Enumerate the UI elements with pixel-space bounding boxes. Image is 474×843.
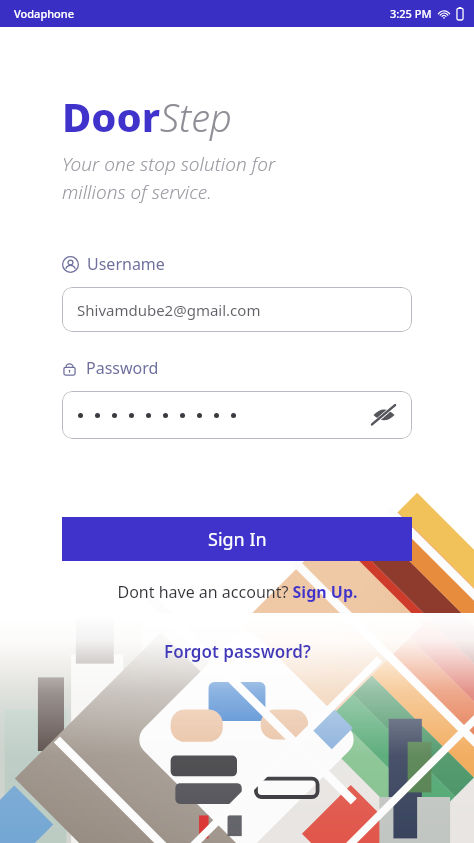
button[interactable]: Show password: [368, 399, 400, 431]
button[interactable]: Dont have an account? Sign Up.: [117, 581, 358, 603]
staticText: Password: [86, 357, 159, 379]
button[interactable]: Shivamdube2@gmail.com: [62, 287, 412, 332]
staticText: 3:25 PM: [390, 6, 432, 21]
staticText: Username: [87, 253, 165, 275]
button[interactable]: Sign In: [62, 517, 412, 561]
staticText: Your one stop solution for millions of s…: [62, 151, 276, 205]
button[interactable]: Forgot password?: [164, 640, 311, 663]
staticText: Sign In: [208, 527, 267, 552]
staticText: DoorStep: [62, 89, 232, 143]
button[interactable]: [78, 413, 236, 418]
staticText: Shivamdube2@gmail.com: [77, 300, 261, 320]
staticText: Vodaphone: [14, 6, 75, 21]
